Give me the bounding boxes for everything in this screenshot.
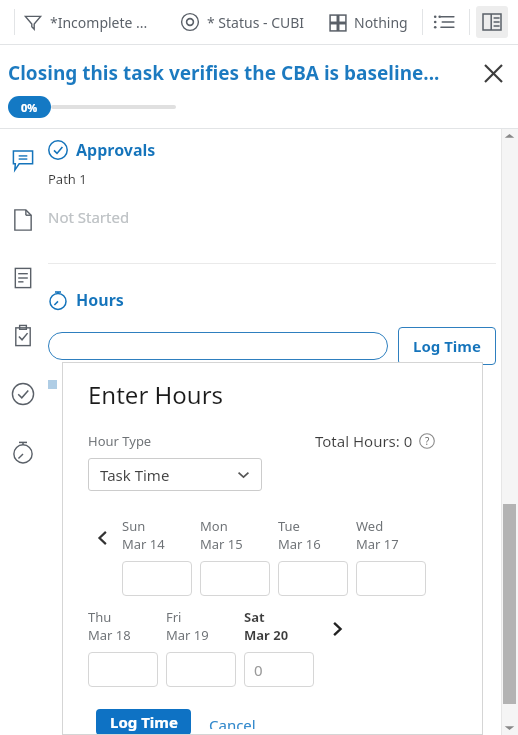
staticText: Hour Type: [88, 432, 152, 450]
button[interactable]: Split view: [476, 6, 508, 38]
button[interactable]: Cancel: [203, 709, 262, 735]
staticText: ?: [425, 434, 430, 448]
staticText: Nothing: [354, 13, 408, 32]
staticText: Wed: [356, 517, 384, 535]
staticText: Log Time: [413, 336, 481, 356]
button[interactable]: Task Time: [88, 458, 262, 491]
staticText: Mon: [200, 517, 228, 535]
button[interactable]: * Status - CUBI: [174, 6, 311, 38]
staticText: Closing this task verifies the CBA is ba…: [8, 60, 440, 86]
button[interactable]: Comments: [8, 145, 38, 175]
staticText: Sat: [244, 608, 265, 626]
button[interactable]: Hours: [48, 289, 124, 311]
staticText: Mar 15: [200, 535, 243, 553]
button[interactable]: Hours: [8, 437, 38, 467]
button[interactable]: [356, 561, 426, 596]
staticText: Fri: [166, 608, 182, 626]
staticText: Path 1: [48, 170, 87, 188]
button[interactable]: [278, 561, 348, 596]
button[interactable]: [122, 561, 192, 596]
staticText: Mar 17: [356, 535, 399, 553]
staticText: Approvals: [76, 139, 156, 161]
staticText: Mar 19: [166, 626, 209, 644]
button[interactable]: 0: [244, 652, 314, 687]
staticText: Tue: [278, 517, 300, 535]
button[interactable]: [200, 561, 270, 596]
staticText: Mar 16: [278, 535, 321, 553]
staticText: Hours: [76, 289, 124, 311]
button[interactable]: *Incomplete ...: [15, 6, 156, 38]
staticText: 0hrs: [102, 376, 129, 392]
staticText: Mar 14: [122, 535, 165, 553]
staticText: Actual:: [63, 376, 102, 392]
button[interactable]: Document: [8, 205, 38, 235]
staticText: Task Time: [100, 465, 170, 485]
button[interactable]: Next week: [322, 614, 352, 644]
button[interactable]: Previous week: [88, 523, 118, 553]
staticText: 0%: [21, 100, 38, 115]
staticText: Enter Hours: [88, 378, 224, 411]
staticText: Mar 20: [244, 626, 289, 644]
button[interactable]: Tasks: [8, 321, 38, 351]
staticText: Not Started: [48, 207, 130, 227]
button[interactable]: Log Time: [96, 709, 191, 735]
button[interactable]: Approvals: [48, 139, 156, 161]
button[interactable]: Closing this task verifies the CBA is ba…: [8, 60, 470, 86]
staticText: Thu: [88, 608, 112, 626]
button[interactable]: Approvals: [8, 379, 38, 409]
staticText: *Incomplete ...: [50, 13, 148, 32]
button[interactable]: [166, 652, 236, 687]
staticText: Total Hours: 0: [315, 431, 413, 451]
button[interactable]: List view: [423, 3, 465, 41]
button[interactable]: Log Time: [398, 327, 496, 365]
button[interactable]: [48, 332, 388, 360]
button[interactable]: Nothing: [323, 7, 414, 38]
button[interactable]: Help: [419, 433, 435, 449]
staticText: Log Time: [110, 712, 178, 732]
button[interactable]: Close: [478, 58, 508, 88]
staticText: Cancel: [209, 715, 256, 729]
staticText: 0: [254, 660, 263, 680]
staticText: * Status - CUBI: [207, 13, 305, 32]
staticText: Mar 18: [88, 626, 131, 644]
staticText: Sun: [122, 517, 146, 535]
button[interactable]: Notes: [8, 263, 38, 293]
button[interactable]: [88, 652, 158, 687]
